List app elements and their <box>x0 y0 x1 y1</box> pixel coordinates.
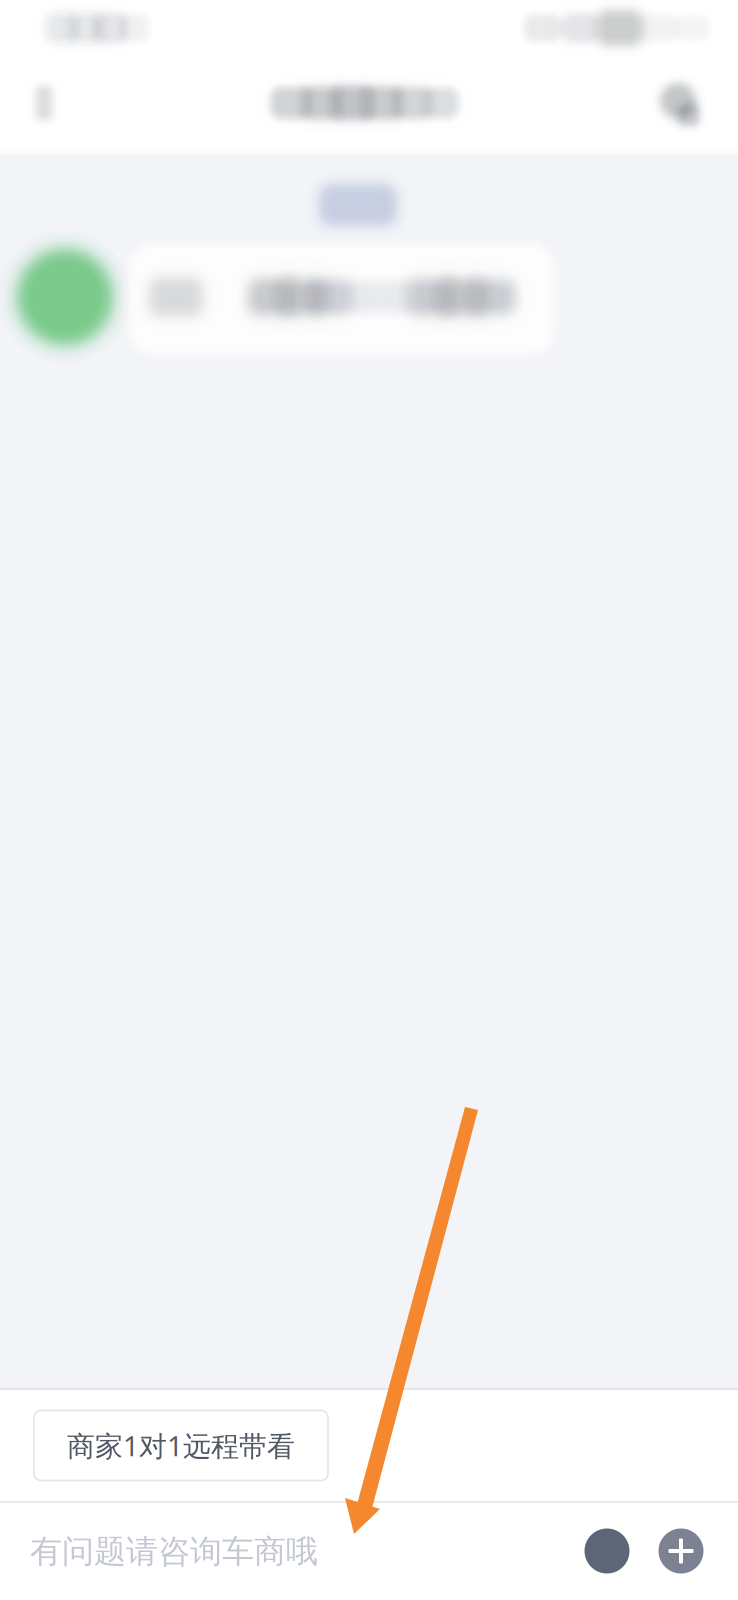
button[interactable]: Search <box>634 61 726 149</box>
staticText: 商家1对1远程带看 <box>67 1427 295 1464</box>
button[interactable]: Voice message <box>573 1517 641 1585</box>
staticText: 有问题请咨询车商哦 <box>30 1532 318 1571</box>
button[interactable]: 商家1对1远程带看 <box>34 1410 328 1480</box>
button[interactable]: Back <box>0 59 90 147</box>
button[interactable]: More actions <box>647 1517 715 1585</box>
